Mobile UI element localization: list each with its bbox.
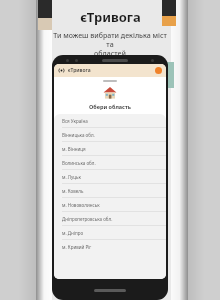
button[interactable]: Alerts xyxy=(155,67,162,74)
staticText: Дніпропетровська обл. xyxy=(62,216,113,222)
staticText: м. Кривий Ріг xyxy=(62,244,92,250)
staticText: м. Нововолинськ xyxy=(62,202,100,208)
staticText: м. Луцьк xyxy=(62,174,81,180)
staticText: м. Вінниця xyxy=(62,146,86,152)
button[interactable]: м. Дніпро xyxy=(54,226,166,240)
staticText: Волинська обл. xyxy=(62,160,96,166)
button[interactable]: Дніпропетровська обл. xyxy=(54,212,166,226)
staticText: Вся Україна xyxy=(62,118,88,124)
staticText: єТривога xyxy=(68,67,91,74)
button[interactable]: Вінницька обл. xyxy=(54,128,166,142)
staticText: Ти можеш вибрати декілька міст та област… xyxy=(52,31,168,58)
staticText: м. Дніпро xyxy=(62,230,84,236)
button[interactable]: м. Нововолинськ xyxy=(54,198,166,212)
button[interactable]: м. Луцьк xyxy=(54,170,166,184)
button[interactable]: м. Вінниця xyxy=(54,142,166,156)
button[interactable]: Волинська обл. xyxy=(54,156,166,170)
button[interactable]: м. Кривий Ріг xyxy=(54,240,166,253)
staticText: Вінницька обл. xyxy=(62,132,95,138)
staticText: м. Ковель xyxy=(62,188,84,194)
staticText: єТривога xyxy=(80,8,141,26)
staticText: Обери область xyxy=(89,103,132,110)
button[interactable]: Вся Україна xyxy=(54,114,166,128)
button[interactable]: м. Ковель xyxy=(54,184,166,198)
